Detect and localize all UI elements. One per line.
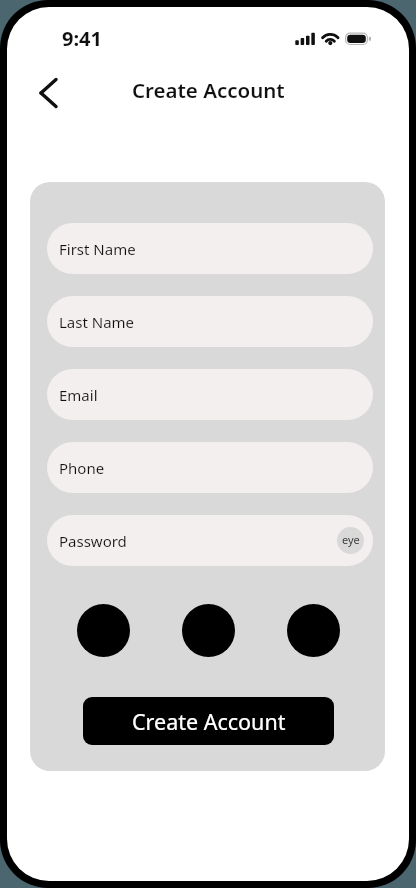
button[interactable]: Email xyxy=(47,369,373,420)
button[interactable]: Sign in with Facebook xyxy=(287,604,340,657)
staticText: eye xyxy=(342,532,360,547)
button[interactable]: Create Account xyxy=(83,697,334,745)
button[interactable]: First Name xyxy=(47,223,373,274)
button[interactable]: Phone xyxy=(47,442,373,493)
button[interactable]: Show password xyxy=(337,527,364,554)
staticText: Password xyxy=(59,531,127,551)
staticText: Create Account xyxy=(132,707,286,736)
staticText: First Name xyxy=(59,239,136,259)
button[interactable]: Password xyxy=(47,515,373,566)
staticText: 9:41 xyxy=(62,25,102,52)
button[interactable]: Sign in with Google xyxy=(77,604,130,657)
staticText: Create Account xyxy=(132,76,285,104)
button[interactable]: Last Name xyxy=(47,296,373,347)
button[interactable]: Back xyxy=(27,71,71,115)
staticText: Phone xyxy=(59,458,105,478)
staticText: Last Name xyxy=(59,312,135,332)
button[interactable]: Sign in with Apple xyxy=(182,604,235,657)
staticText: Email xyxy=(59,385,98,405)
